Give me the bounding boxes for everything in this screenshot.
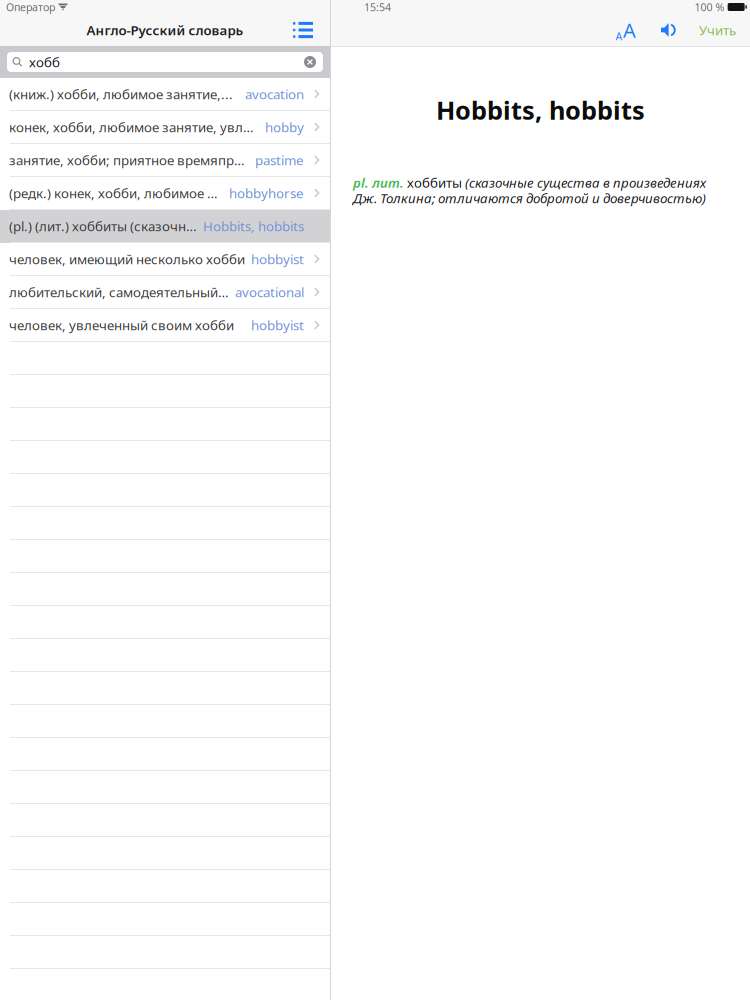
staticText: человек, увлеченный своим хобби — [9, 316, 234, 334]
staticText: Оператор — [6, 0, 55, 14]
staticText: конек, хобби, любимое занятие, увле... — [9, 118, 259, 136]
staticText: avocational — [235, 283, 304, 301]
button[interactable]: (редк.) конек, хобби, любимое з... — [0, 177, 330, 210]
button[interactable]: занятие, хобби; приятное времяпре... — [0, 144, 330, 177]
staticText: pastime — [255, 151, 304, 169]
staticText: занятие, хобби; приятное времяпре... — [9, 151, 249, 169]
button[interactable]: Учить — [695, 14, 740, 46]
button[interactable]: человек, увлеченный своим хобби — [0, 309, 330, 342]
staticText: (сказочные существа в произведениях — [465, 174, 706, 191]
staticText: A — [623, 17, 636, 43]
staticText: хоббиты — [404, 174, 465, 191]
staticText: хобб — [29, 53, 60, 71]
staticText: Дж. Толкина; отличаются добротой и довер… — [353, 189, 706, 207]
button[interactable]: конек, хобби, любимое занятие, увле... — [0, 111, 330, 144]
staticText: любительский, самодеятельный;... — [9, 283, 229, 301]
staticText: Hobbits, hobbits — [436, 93, 645, 127]
staticText: 100 % — [694, 0, 724, 14]
staticText: Англо-Русский словарь — [86, 21, 243, 39]
staticText: (pl.) (лит.) хоббиты (сказочн... — [9, 217, 197, 235]
staticText: (книж.) хобби, любимое занятие,... — [9, 85, 233, 103]
staticText: pl. лит. — [353, 174, 404, 191]
staticText: hobbyhorse — [229, 184, 304, 202]
staticText: hobbyist — [251, 250, 304, 268]
button[interactable]: (pl.) (лит.) хоббиты (сказочн... — [0, 210, 330, 243]
button[interactable]: человек, имеющий несколько хобби — [0, 243, 330, 276]
staticText: avocation — [245, 85, 304, 103]
staticText: человек, имеющий несколько хобби — [9, 250, 245, 268]
button[interactable]: Clear search — [304, 56, 316, 68]
staticText: Hobbits, hobbits — [203, 217, 304, 235]
staticText: hobby — [265, 118, 304, 136]
staticText: (редк.) конек, хобби, любимое з... — [9, 184, 223, 202]
button[interactable]: Text size — [609, 12, 642, 48]
button[interactable]: Pronounce — [654, 15, 684, 44]
button[interactable]: (книж.) хобби, любимое занятие,... — [0, 78, 330, 111]
button[interactable]: любительский, самодеятельный;... — [0, 276, 330, 309]
staticText: Учить — [699, 21, 736, 39]
staticText: 15:54 — [364, 0, 391, 14]
staticText: hobbyist — [251, 316, 304, 334]
button[interactable]: Word list — [285, 16, 321, 44]
staticText: A — [615, 29, 622, 43]
